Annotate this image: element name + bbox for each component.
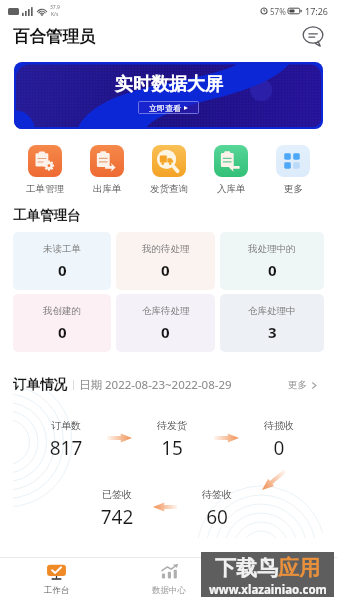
staticText: 0 xyxy=(268,260,277,280)
staticText: 未读工单 xyxy=(43,243,81,255)
button[interactable]: 我处理中的 xyxy=(220,232,324,290)
staticText: 订单数 xyxy=(26,419,106,432)
button[interactable]: 未读工单 xyxy=(13,232,111,290)
staticText: 60 xyxy=(177,504,257,530)
staticText: 更多 xyxy=(288,379,307,391)
button[interactable]: 待揽收 xyxy=(239,419,319,461)
staticText: 我的待处理 xyxy=(142,243,190,255)
staticText: 工单管理 xyxy=(26,183,64,195)
staticText: 0 xyxy=(161,260,170,280)
staticText: 更多 xyxy=(284,183,303,195)
button[interactable]: 立即查看 xyxy=(138,101,199,114)
button[interactable]: 实时数据大屏 xyxy=(14,62,323,129)
button[interactable]: 发货查询 xyxy=(138,145,200,195)
staticText: 57% xyxy=(270,6,286,17)
staticText: 0 xyxy=(161,322,170,342)
staticText: 数据中心 xyxy=(152,585,186,596)
staticText: 立即查看 xyxy=(149,103,181,113)
button[interactable]: 出库单 xyxy=(76,145,138,195)
staticText: 百合管理员 xyxy=(13,26,96,47)
button[interactable]: 我的 xyxy=(225,558,337,600)
staticText: 订单情况 xyxy=(13,376,67,393)
staticText: 待揽收 xyxy=(239,419,319,432)
staticText: 0 xyxy=(239,435,319,461)
staticText: 出库单 xyxy=(93,183,122,195)
staticText: 37.9 xyxy=(50,4,60,11)
staticText: 742 xyxy=(77,504,157,530)
staticText: 已签收 xyxy=(77,488,157,501)
staticText: 待发货 xyxy=(132,419,212,432)
staticText: 实时数据大屏 xyxy=(115,73,223,96)
staticText: 我处理中的 xyxy=(248,243,296,255)
staticText: 仓库待处理 xyxy=(142,305,190,317)
staticText: K/s xyxy=(51,11,59,18)
button[interactable]: 入库单 xyxy=(200,145,262,195)
button[interactable]: 订单数 xyxy=(26,419,106,461)
button[interactable]: 工作台 xyxy=(0,558,113,600)
button[interactable]: Messages xyxy=(301,24,325,48)
staticText: 工作台 xyxy=(44,585,70,596)
staticText: 仓库处理中 xyxy=(248,305,296,317)
button[interactable]: 仓库处理中 xyxy=(220,294,324,352)
button[interactable]: 待发货 xyxy=(132,419,212,461)
staticText: 我的 xyxy=(273,585,290,596)
staticText: www.xlazainiao.com xyxy=(209,582,327,597)
button[interactable]: 更多 xyxy=(262,145,324,195)
button[interactable]: 我的待处理 xyxy=(116,232,215,290)
staticText: 817 xyxy=(26,435,106,461)
staticText: 0 xyxy=(58,260,67,280)
staticText: 待签收 xyxy=(177,488,257,501)
staticText: 工单管理台 xyxy=(13,207,81,224)
button[interactable]: 更多 xyxy=(288,379,323,391)
staticText: 0 xyxy=(58,322,67,342)
staticText: 15 xyxy=(132,435,212,461)
staticText: 应用 xyxy=(278,555,320,581)
staticText: 发货查询 xyxy=(150,183,188,195)
staticText: 我创建的 xyxy=(43,305,81,317)
staticText: 日期 2022-08-23~2022-08-29 xyxy=(79,377,232,393)
button[interactable]: 我创建的 xyxy=(13,294,111,352)
staticText: 入库单 xyxy=(217,183,246,195)
staticText: 3 xyxy=(268,322,277,342)
button[interactable]: 已签收 xyxy=(77,488,157,530)
button[interactable]: 仓库待处理 xyxy=(116,294,215,352)
button[interactable]: 工单管理 xyxy=(13,145,76,195)
staticText: 17:26 xyxy=(305,5,329,17)
button[interactable]: 数据中心 xyxy=(113,558,225,600)
staticText: 下载鸟 xyxy=(215,555,278,581)
button[interactable]: 待签收 xyxy=(177,488,257,530)
